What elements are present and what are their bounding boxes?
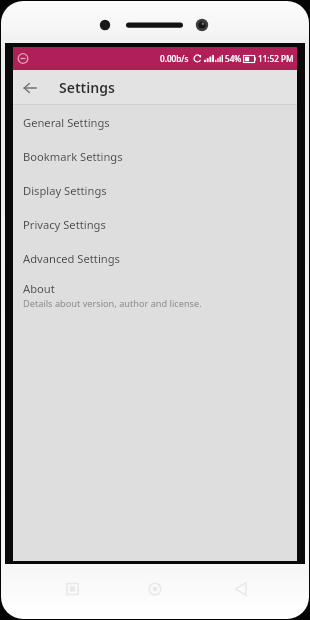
staticText: Details about version, author and licens… [23, 297, 202, 310]
button[interactable]: Advanced Settings [13, 241, 297, 275]
button[interactable]: Bookmark Settings [13, 139, 297, 173]
staticText: 54% [225, 53, 242, 64]
button[interactable]: Privacy Settings [13, 207, 297, 241]
button[interactable]: General Settings [13, 105, 297, 139]
staticText: Settings [59, 78, 115, 97]
staticText: Bookmark Settings [23, 149, 123, 164]
button[interactable]: Display Settings [13, 173, 297, 207]
staticText: Display Settings [23, 183, 107, 198]
staticText: 0.00b/s [160, 53, 189, 64]
staticText: 11:52 PM [258, 53, 294, 64]
staticText: Privacy Settings [23, 217, 106, 232]
button[interactable]: About [13, 275, 297, 316]
staticText: Advanced Settings [23, 251, 120, 266]
button[interactable]: Back [13, 71, 46, 104]
staticText: General Settings [23, 115, 110, 130]
staticText: About [23, 281, 55, 296]
